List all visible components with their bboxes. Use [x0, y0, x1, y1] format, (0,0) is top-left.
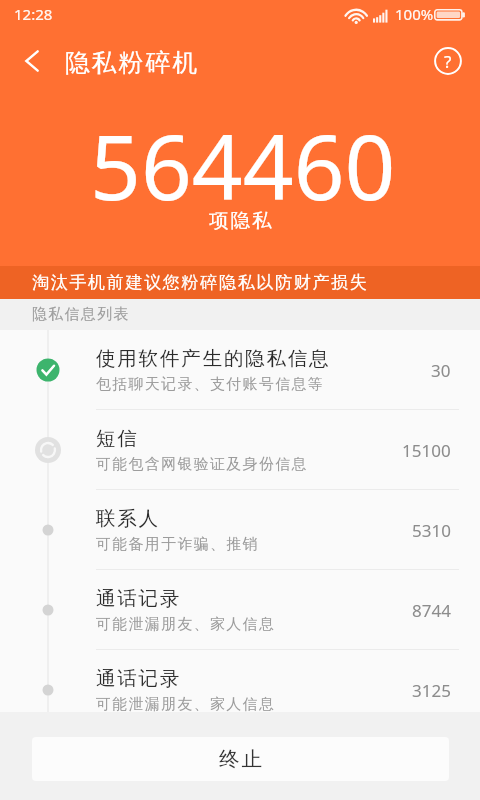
- staticText: 15100: [402, 439, 451, 462]
- staticText: 可能泄漏朋友、家人信息: [96, 695, 276, 712]
- button[interactable]: 联系人: [0, 490, 480, 570]
- staticText: 包括聊天记录、支付账号信息等: [96, 375, 325, 394]
- staticText: 3125: [412, 679, 451, 702]
- staticText: 短信: [96, 426, 139, 451]
- button[interactable]: Back: [10, 30, 54, 92]
- staticText: 100%: [395, 4, 434, 24]
- staticText: 使用软件产生的隐私信息: [96, 346, 331, 371]
- staticText: 淘汰手机前建议您粉碎隐私以防财产损失: [32, 272, 369, 294]
- staticText: 564460: [90, 105, 396, 226]
- button[interactable]: 短信: [0, 410, 480, 490]
- staticText: 可能包含网银验证及身份信息: [96, 455, 308, 474]
- button[interactable]: 使用软件产生的隐私信息: [0, 330, 480, 410]
- staticText: 可能泄漏朋友、家人信息: [96, 615, 276, 634]
- button[interactable]: Help: [426, 30, 470, 92]
- staticText: 终止: [219, 746, 264, 772]
- button[interactable]: 通话记录: [0, 570, 480, 650]
- staticText: 12:28: [14, 4, 53, 24]
- staticText: 通话记录: [96, 666, 182, 691]
- staticText: 项隐私: [209, 208, 274, 233]
- button[interactable]: 终止: [32, 737, 449, 781]
- staticText: 可能备用于诈骗、推销: [96, 535, 259, 554]
- staticText: 5310: [412, 519, 451, 542]
- staticText: 8744: [412, 599, 451, 622]
- button[interactable]: 通话记录: [0, 650, 480, 712]
- staticText: 30: [431, 359, 451, 382]
- staticText: ?: [444, 50, 452, 73]
- staticText: 隐私信息列表: [32, 305, 130, 324]
- staticText: 联系人: [96, 506, 160, 531]
- staticText: 隐私粉碎机: [65, 47, 199, 78]
- staticText: 通话记录: [96, 586, 182, 611]
